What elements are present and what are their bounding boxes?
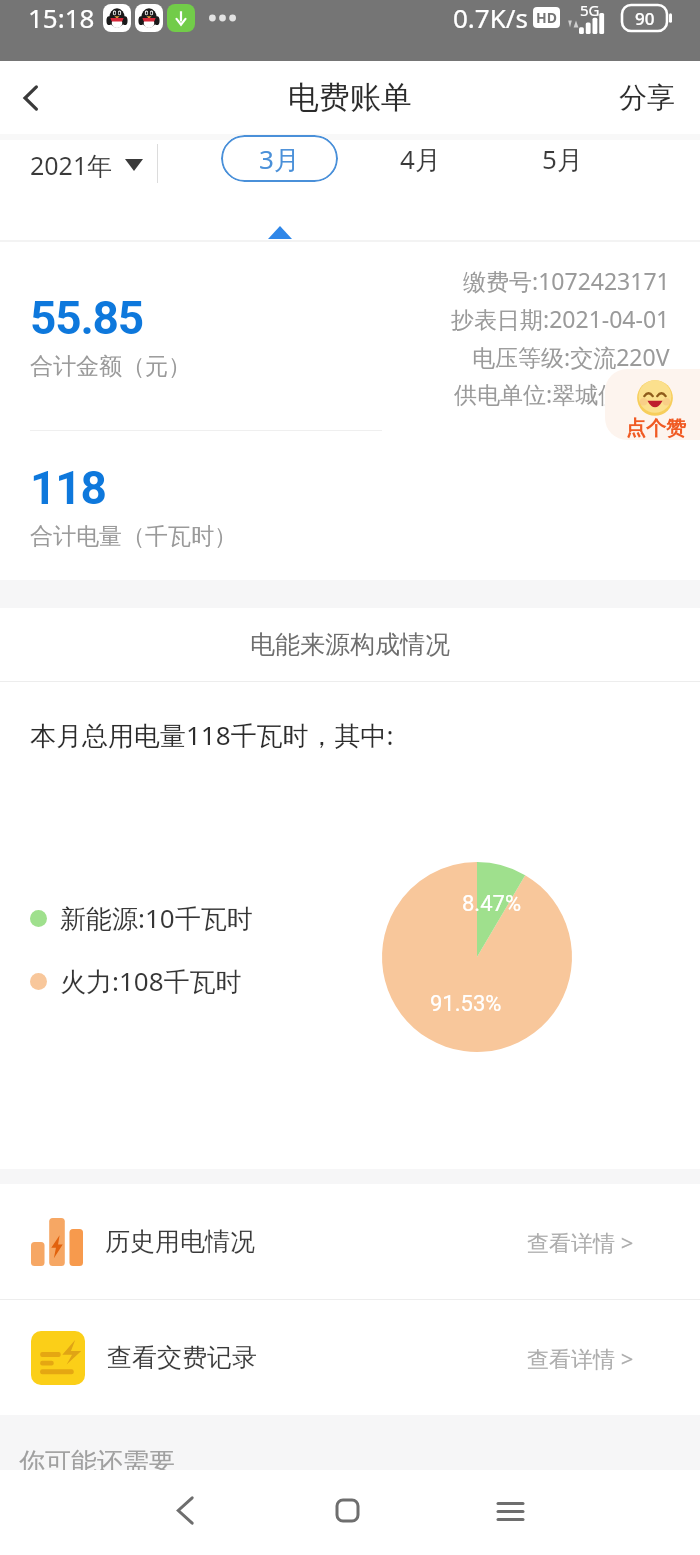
staticText: 电压等级:交流220V <box>472 341 670 372</box>
staticText: 合计金额（元） <box>30 352 191 381</box>
button[interactable]: 点个赞 <box>605 369 700 440</box>
staticText: 点个赞 <box>626 416 686 440</box>
button[interactable]: 分享 <box>595 61 700 134</box>
staticText: 5月 <box>542 141 583 177</box>
button[interactable]: 查看交费记录 <box>0 1300 700 1415</box>
staticText: 电能来源构成情况 <box>250 629 450 660</box>
button[interactable]: 主页 <box>266 1478 429 1542</box>
staticText: 缴费号:1072423171 <box>463 265 670 296</box>
staticText: 3月 <box>259 141 300 177</box>
staticText: 2021年 <box>30 148 113 182</box>
staticText: 8.47% <box>462 891 522 917</box>
button[interactable]: 历史用电情况 <box>0 1184 700 1299</box>
staticText: 118 <box>30 461 106 515</box>
staticText: 91.53% <box>430 991 502 1017</box>
button[interactable]: 4月 <box>350 135 490 182</box>
staticText: 供电单位:翠城供 <box>454 378 622 409</box>
staticText: 合计电量（千瓦时） <box>30 522 237 551</box>
staticText: HD <box>536 8 557 27</box>
staticText: 5G <box>580 0 600 20</box>
staticText: 查看详情 > <box>527 1343 634 1373</box>
staticText: 4月 <box>400 141 441 177</box>
staticText: 分享 <box>619 80 675 115</box>
staticText: 90 <box>635 7 655 30</box>
staticText: 抄表日期:2021-04-01 <box>451 303 670 334</box>
staticText: 本月总用电量118千瓦时，其中: <box>30 717 394 753</box>
staticText: 火力:108千瓦时 <box>60 963 242 999</box>
staticText: 0.7K/s <box>453 0 528 35</box>
staticText: 查看交费记录 <box>107 1342 257 1373</box>
staticText: 55.85 <box>30 291 143 345</box>
button[interactable]: 返回 <box>103 1478 266 1542</box>
button[interactable]: 3月 <box>221 135 338 182</box>
button[interactable]: 菜单 <box>429 1478 592 1542</box>
staticText: 新能源:10千瓦时 <box>60 900 253 936</box>
button[interactable]: 返回 <box>0 61 62 134</box>
button[interactable]: 2021年 <box>0 134 157 195</box>
staticText: 历史用电情况 <box>105 1226 255 1257</box>
staticText: 电费账单 <box>288 78 412 117</box>
staticText: 你可能还需要 <box>19 1446 175 1470</box>
button[interactable]: 5月 <box>492 135 632 182</box>
staticText: 查看详情 > <box>527 1227 634 1257</box>
staticText: 15:18 <box>28 0 95 35</box>
